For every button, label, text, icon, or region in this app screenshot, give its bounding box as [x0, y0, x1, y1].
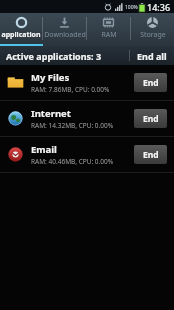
button[interactable]: End all: [130, 47, 174, 65]
button[interactable]: Internet: [0, 101, 174, 136]
button[interactable]: Email: [0, 137, 174, 172]
button[interactable]: application: [0, 13, 42, 44]
button[interactable]: End: [134, 145, 167, 164]
staticText: Email: [31, 143, 57, 156]
staticText: End: [143, 113, 159, 125]
button[interactable]: End: [134, 109, 167, 128]
staticText: Internet: [31, 107, 71, 120]
staticText: End: [143, 149, 159, 161]
staticText: RAM: 14.32MB, CPU: 0.00%: [31, 121, 114, 130]
button[interactable]: RAM: [87, 13, 130, 44]
staticText: Active applications: 3: [6, 50, 129, 62]
button[interactable]: End: [134, 73, 167, 92]
staticText: Downloaded: [44, 30, 86, 40]
staticText: Storage: [140, 30, 166, 40]
staticText: 14:36: [147, 1, 171, 13]
staticText: application: [1, 30, 41, 40]
staticText: End: [143, 77, 159, 89]
button[interactable]: My Files: [0, 65, 174, 100]
staticText: 100%: [125, 4, 138, 11]
staticText: RAM: [101, 30, 117, 40]
staticText: My Files: [31, 71, 70, 84]
staticText: RAM: 40.46MB, CPU: 0.00%: [31, 157, 114, 166]
staticText: RAM: 7.86MB, CPU: 0.00%: [31, 85, 110, 94]
button[interactable]: Storage: [131, 13, 174, 44]
staticText: End all: [137, 50, 167, 62]
button[interactable]: Downloaded: [43, 13, 86, 44]
